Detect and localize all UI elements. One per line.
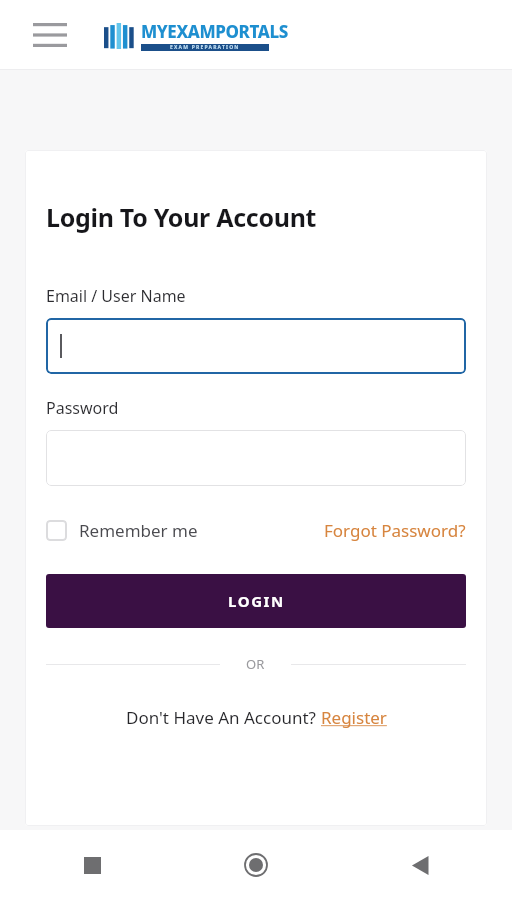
button[interactable]: Email or user name field [46, 318, 466, 374]
staticText: Remember me [79, 519, 198, 542]
staticText: Login To Your Account [46, 200, 317, 234]
button[interactable]: Forgot Password? [324, 519, 466, 542]
staticText: Forgot Password? [324, 519, 466, 542]
staticText: EXAM PREPARATION [170, 44, 240, 51]
staticText: Don't Have An Account? [126, 706, 321, 729]
button[interactable]: LOGIN [46, 574, 466, 628]
button[interactable]: Recent apps [70, 843, 114, 887]
staticText: MYEXAMPORTALS [141, 20, 288, 43]
staticText: OR [246, 655, 265, 673]
staticText: Password [46, 397, 119, 419]
staticText: LOGIN [228, 591, 285, 611]
button[interactable]: Password field [46, 430, 466, 486]
button[interactable]: Home [234, 843, 278, 887]
button[interactable]: Back [398, 843, 442, 887]
button[interactable]: Register [321, 706, 387, 729]
staticText: Register [321, 706, 387, 729]
staticText: Email / User Name [46, 285, 186, 307]
button[interactable]: Open menu [28, 13, 72, 57]
button[interactable]: MyExamPortals home [104, 20, 288, 51]
button[interactable]: Remember me [46, 519, 198, 542]
